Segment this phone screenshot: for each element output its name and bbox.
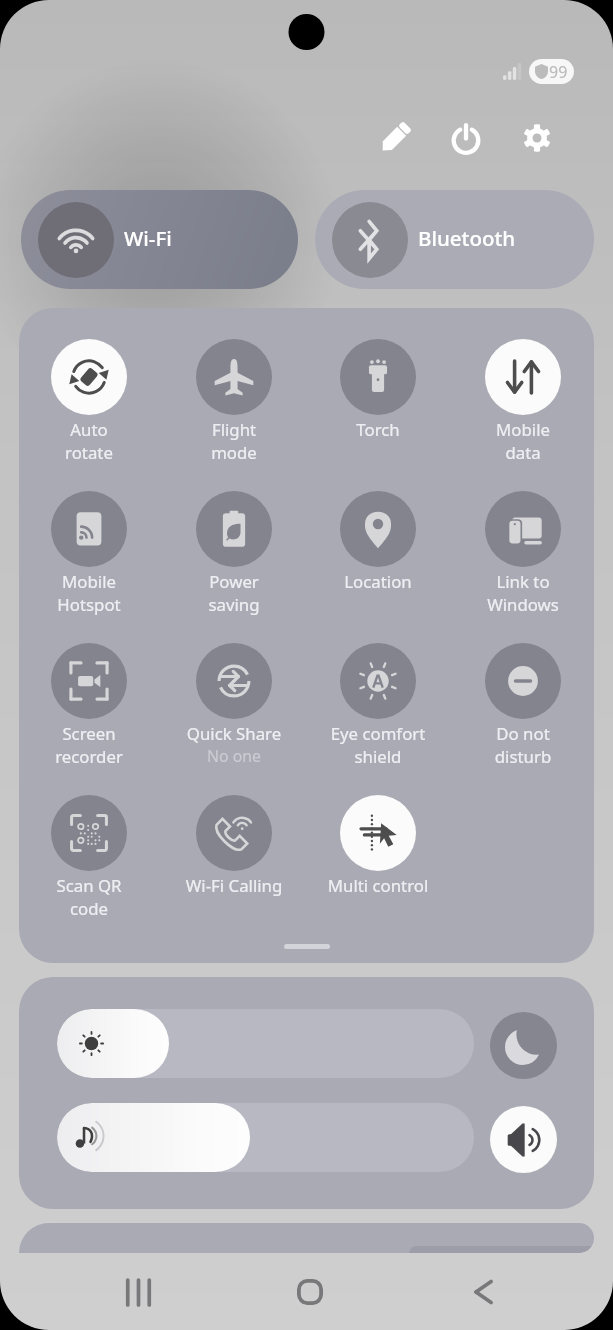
button[interactable]: Bluetooth — [315, 190, 594, 289]
button[interactable]: Flight — [164, 339, 304, 464]
staticText: Mobile — [19, 570, 159, 593]
staticText: Multi control — [308, 874, 448, 897]
button[interactable]: Dark mode — [57, 1009, 474, 1078]
staticText: rotate — [19, 441, 159, 464]
staticText: Mobile — [453, 418, 593, 441]
button[interactable]: Mobile — [19, 491, 159, 616]
staticText: Location — [308, 570, 448, 593]
button[interactable]: Auto — [19, 339, 159, 464]
staticText: Do not — [453, 722, 593, 745]
button[interactable]: Settings — [515, 116, 559, 160]
staticText: Screen — [19, 722, 159, 745]
button[interactable]: Back — [448, 1258, 516, 1326]
staticText: Wi-Fi — [124, 224, 172, 252]
staticText: shield — [308, 745, 448, 768]
staticText: Hotspot — [19, 593, 159, 616]
button[interactable]: Scan QR — [19, 795, 159, 920]
staticText: No one — [164, 745, 304, 767]
staticText: Link to — [453, 570, 593, 593]
button[interactable]: Location — [308, 491, 448, 593]
staticText: code — [19, 897, 159, 920]
staticText: Quick Share — [164, 722, 304, 745]
staticText: Wi-Fi Calling — [164, 874, 304, 897]
button[interactable]: Recents — [104, 1258, 172, 1326]
staticText: data — [453, 441, 593, 464]
button[interactable]: Power off — [444, 117, 488, 161]
staticText: Power — [164, 570, 304, 593]
staticText: Torch — [308, 418, 448, 441]
button[interactable]: Multi control — [308, 795, 448, 897]
button[interactable]: Link to — [453, 491, 593, 616]
button[interactable]: Sound settings — [490, 1106, 557, 1173]
button[interactable]: Mobile — [453, 339, 593, 464]
staticText: disturb — [453, 745, 593, 768]
button[interactable]: Edit — [373, 116, 417, 160]
button[interactable]: Torch — [308, 339, 448, 441]
button[interactable]: Eye comfort — [308, 643, 448, 768]
staticText: saving — [164, 593, 304, 616]
button[interactable]: Dark mode — [490, 1012, 557, 1079]
button[interactable]: Quick Share — [164, 643, 304, 767]
staticText: recorder — [19, 745, 159, 768]
staticText: 99 — [549, 61, 568, 83]
staticText: Bluetooth — [418, 224, 516, 252]
staticText: Auto — [19, 418, 159, 441]
button[interactable]: Do not — [453, 643, 593, 768]
button[interactable]: Power — [164, 491, 304, 616]
staticText: Scan QR — [19, 874, 159, 897]
button[interactable]: Sound settings — [57, 1103, 474, 1172]
button[interactable]: Wi-Fi — [21, 190, 298, 289]
button[interactable]: Home — [276, 1258, 344, 1326]
button[interactable]: Wi-Fi Calling — [164, 795, 304, 897]
staticText: Windows — [453, 593, 593, 616]
button[interactable]: Screen — [19, 643, 159, 768]
staticText: mode — [164, 441, 304, 464]
staticText: Eye comfort — [308, 722, 448, 745]
staticText: Flight — [164, 418, 304, 441]
